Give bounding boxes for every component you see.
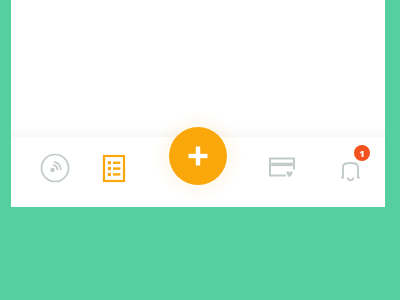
button[interactable]: Add bbox=[169, 127, 227, 185]
button[interactable]: List bbox=[90, 144, 138, 192]
button[interactable]: Notifications bbox=[327, 144, 375, 192]
staticText: 1 bbox=[359, 147, 365, 159]
button[interactable]: Card bbox=[258, 144, 306, 192]
button[interactable]: Discover bbox=[31, 144, 79, 192]
